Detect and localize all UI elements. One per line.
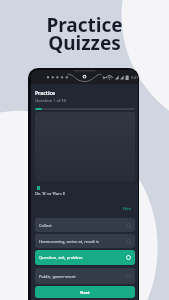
staticText: Question, ask, problem — [39, 255, 83, 260]
staticText: Homecoming, arrive at, result is — [39, 239, 99, 244]
button[interactable]: Hint — [123, 206, 132, 211]
staticText: Next — [80, 290, 90, 295]
button[interactable]: Public, government — [35, 268, 135, 284]
staticText: Practice Quizzes — [0, 12, 169, 55]
staticText: Collect — [39, 223, 52, 228]
button[interactable]: Collect — [35, 218, 135, 232]
button[interactable]: Homecoming, arrive at, result is — [35, 234, 135, 248]
staticText: 9:41 — [131, 75, 138, 80]
staticText: Practice — [35, 90, 56, 97]
button[interactable]: Question, ask, problem — [35, 250, 135, 265]
staticText: Question 1 of 30 — [35, 98, 66, 103]
button[interactable]: Next — [35, 286, 135, 298]
staticText: On 'It' or 'Run: E — [35, 191, 66, 196]
staticText: Public, government — [39, 274, 76, 279]
staticText: Hint — [123, 206, 132, 211]
